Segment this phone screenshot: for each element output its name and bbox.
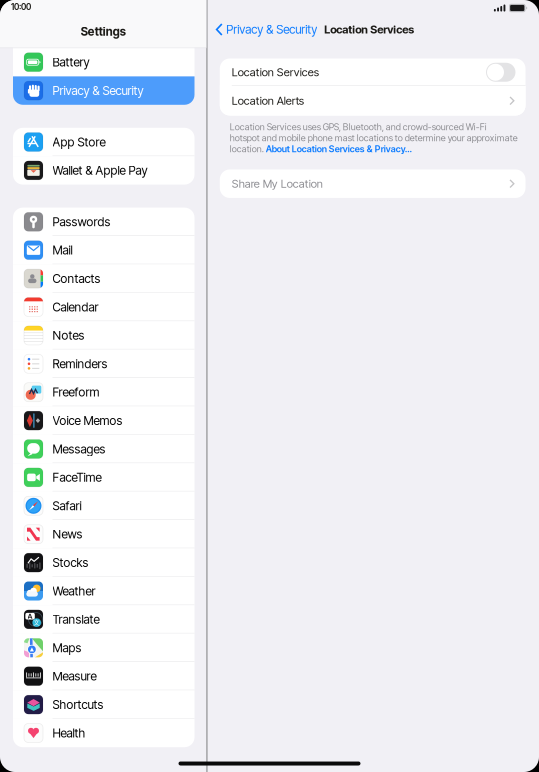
staticText: Privacy & Security <box>226 22 317 37</box>
staticText: Measure <box>52 669 96 683</box>
button[interactable]: Battery <box>13 48 194 76</box>
staticText: Wallet & Apple Pay <box>52 163 147 178</box>
button[interactable]: Reminders <box>13 350 194 378</box>
button[interactable]: About Location Services & Privacy… <box>266 143 412 154</box>
staticText: About Location Services & Privacy… <box>266 143 412 154</box>
staticText: News <box>52 527 82 541</box>
staticText: Mail <box>52 243 72 257</box>
staticText: Translate <box>52 612 99 627</box>
staticText: Settings <box>81 24 126 38</box>
button[interactable]: Privacy & Security <box>13 76 194 105</box>
button[interactable]: News <box>13 520 194 548</box>
button[interactable]: A <box>13 605 194 634</box>
button[interactable]: Contacts <box>13 264 194 293</box>
staticText: Location Services uses GPS, Bluetooth, a… <box>230 121 487 133</box>
staticText: FaceTime <box>52 470 101 485</box>
staticText: Shortcuts <box>52 697 103 712</box>
button[interactable]: Health <box>13 719 194 747</box>
staticText: Safari <box>52 498 81 513</box>
button[interactable]: Measure <box>13 662 194 690</box>
button[interactable]: Privacy & Security <box>216 22 324 37</box>
button[interactable]: Weather <box>13 577 194 605</box>
staticText: Maps <box>52 640 81 655</box>
staticText: location. <box>230 143 266 154</box>
staticText: Location Alerts <box>232 94 304 108</box>
staticText: A <box>28 612 33 620</box>
staticText: Share My Location <box>232 177 323 190</box>
button[interactable]: Stocks <box>13 548 194 577</box>
button[interactable]: Location Services <box>486 63 515 82</box>
button[interactable]: Wallet & Apple Pay <box>13 156 194 185</box>
button[interactable]: Voice Memos <box>13 406 194 435</box>
staticText: Battery <box>52 55 89 69</box>
staticText: Notes <box>52 328 84 343</box>
staticText: Weather <box>52 584 95 598</box>
staticText: Contacts <box>52 271 100 286</box>
button[interactable]: Freeform <box>13 378 194 406</box>
staticText: Passwords <box>52 214 110 229</box>
button[interactable]: Location Alerts <box>220 86 525 115</box>
button[interactable]: Safari <box>13 492 194 520</box>
button[interactable]: Calendar <box>13 293 194 321</box>
staticText: Messages <box>52 442 105 456</box>
staticText: Calendar <box>52 300 98 314</box>
button[interactable]: Maps <box>13 634 194 662</box>
button[interactable]: Share My Location <box>220 169 525 198</box>
button[interactable]: Shortcuts <box>13 690 194 719</box>
button[interactable]: Mail <box>13 236 194 264</box>
button[interactable]: Notes <box>13 321 194 350</box>
staticText: Reminders <box>52 356 107 371</box>
button[interactable]: App Store <box>13 128 194 156</box>
button[interactable]: Messages <box>13 435 194 463</box>
staticText: Location Services <box>324 23 414 36</box>
button[interactable]: Passwords <box>13 208 194 236</box>
staticText: hotspot and mobile phone mast locations … <box>230 132 518 144</box>
staticText: 10:00 <box>11 2 31 12</box>
staticText: Freeform <box>52 385 99 399</box>
staticText: Location Services <box>232 65 319 79</box>
staticText: Health <box>52 726 85 740</box>
button[interactable]: FaceTime <box>13 463 194 492</box>
staticText: Privacy & Security <box>52 83 143 98</box>
staticText: Stocks <box>52 555 88 570</box>
staticText: 文 <box>33 618 40 627</box>
staticText: Voice Memos <box>52 413 122 428</box>
staticText: App Store <box>52 135 105 149</box>
